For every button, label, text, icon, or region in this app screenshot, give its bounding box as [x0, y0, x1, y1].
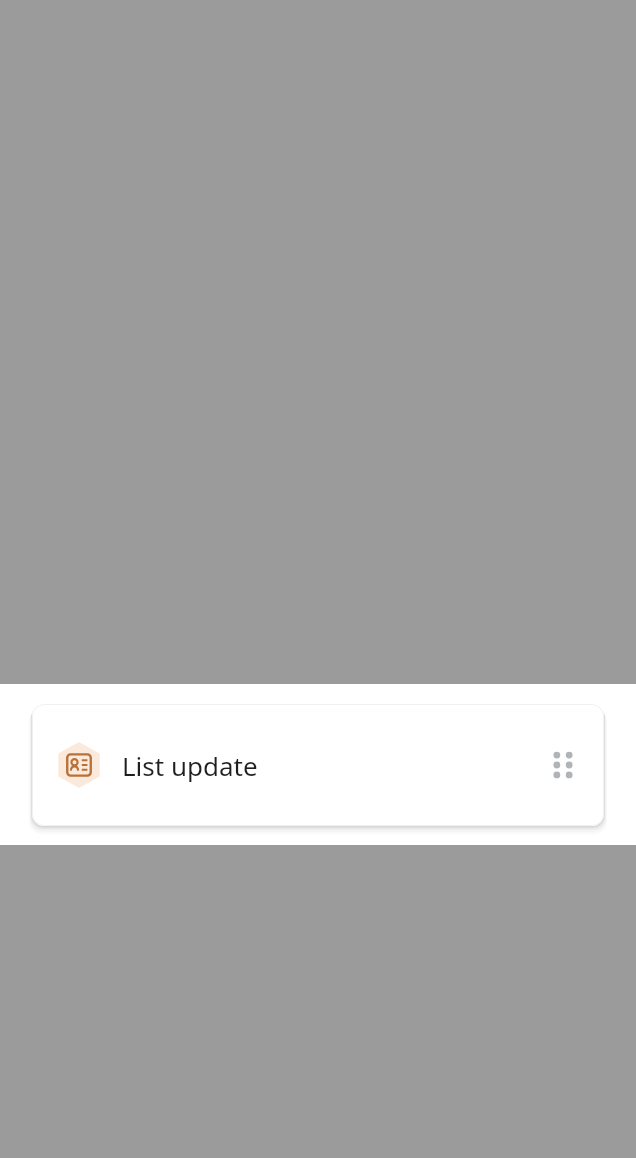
staticText: List update [122, 748, 258, 783]
staticText: List update [122, 748, 258, 783]
button[interactable]: List update [32, 704, 604, 826]
button[interactable]: Reorder [546, 748, 580, 782]
button[interactable]: List update [32, 704, 604, 826]
button[interactable]: Reorder [546, 748, 580, 782]
